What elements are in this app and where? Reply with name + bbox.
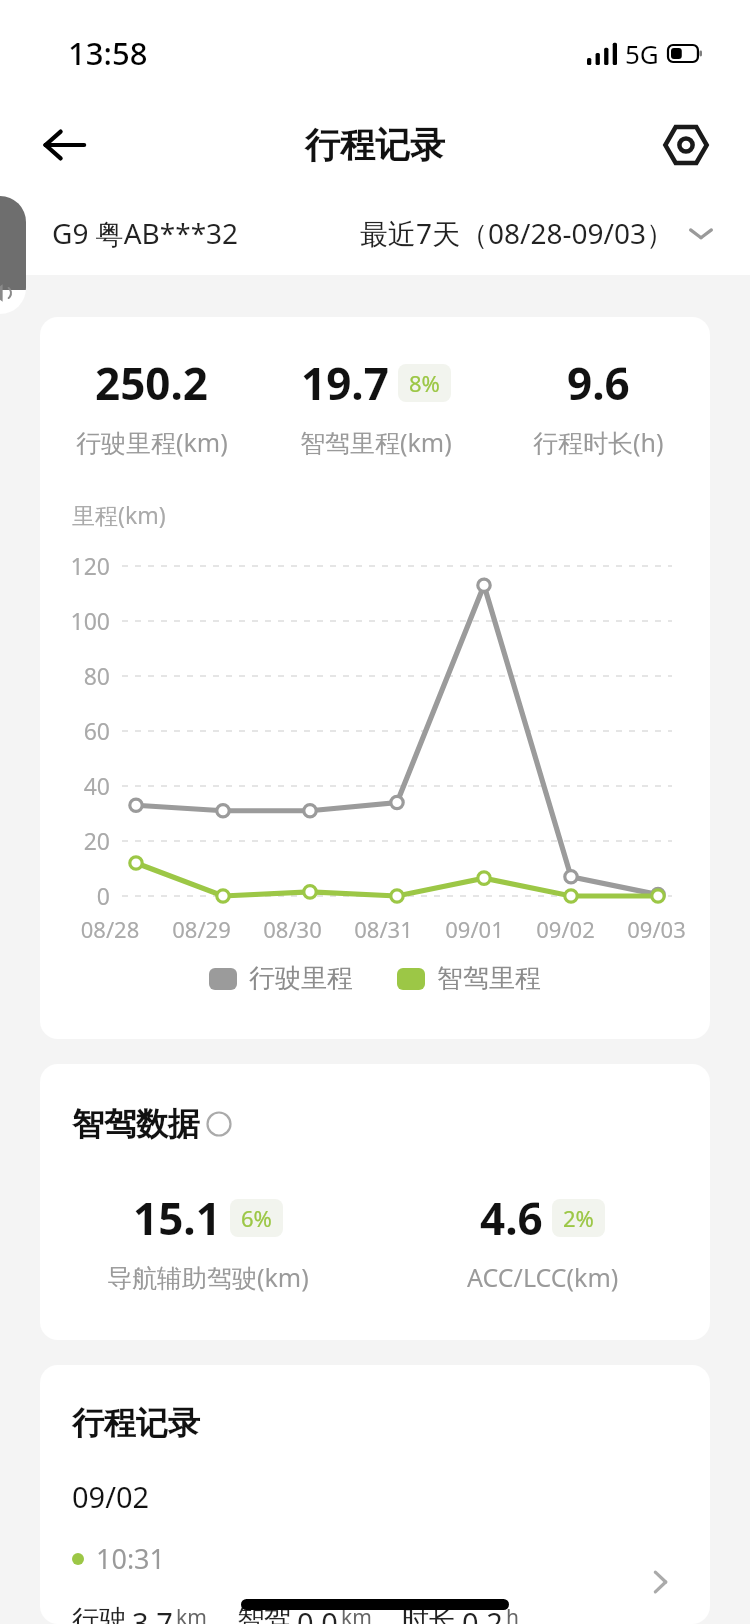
staticText: 行程时长(h) (533, 425, 664, 459)
staticText: 里程(km) (72, 499, 166, 530)
staticText: 行程记录 (72, 1403, 200, 1443)
staticText: 08/28 (64, 914, 156, 944)
staticText: 5G (625, 36, 659, 71)
staticText: km (341, 1603, 372, 1624)
staticText: 09/03 (611, 914, 702, 944)
staticText: 15.1 (133, 1188, 221, 1248)
button[interactable]: 最近7天（08/28-09/03） (360, 214, 714, 252)
staticText: 3.7 (132, 1603, 173, 1624)
staticText: 0.2 (462, 1603, 503, 1624)
button[interactable]: 9.6 (487, 353, 710, 459)
staticText: 40 (40, 770, 110, 801)
staticText: 4.6 (480, 1188, 543, 1248)
staticText: 09/01 (429, 914, 520, 944)
staticText: 智驾 (237, 1603, 291, 1624)
staticText: 智驾里程 (437, 962, 541, 995)
button[interactable]: 行驶里程 (209, 962, 353, 995)
staticText: 0.0 (297, 1603, 338, 1624)
staticText: 20 (40, 825, 110, 856)
button[interactable]: 15.1 (40, 1188, 375, 1294)
button[interactable]: Settings (648, 107, 724, 183)
staticText: 6% (241, 1203, 272, 1233)
staticText: 导航辅助驾驶(km) (107, 1260, 309, 1294)
staticText: 09/02 (520, 914, 611, 944)
staticText: ACC/LCC(km) (467, 1260, 619, 1294)
staticText: 智驾里程(km) (300, 425, 452, 459)
staticText: 80 (40, 660, 110, 691)
staticText: 时长 (402, 1603, 456, 1624)
button[interactable]: 智驾里程 (397, 962, 541, 995)
button[interactable]: 19.7 (264, 353, 487, 459)
staticText: 120 (40, 550, 110, 581)
staticText: 100 (40, 605, 110, 636)
staticText: 250.2 (95, 353, 209, 413)
staticText: 9.6 (567, 353, 630, 413)
staticText: G9 粤AB***32 (52, 214, 239, 252)
staticText: 行驶里程(km) (76, 425, 228, 459)
staticText: h (506, 1603, 519, 1624)
button[interactable]: 智驾数据 (72, 1104, 232, 1144)
staticText: 08/31 (338, 914, 429, 944)
button[interactable]: 10:31 (40, 1540, 710, 1624)
staticText: 行驶 (72, 1603, 126, 1624)
staticText: 09/02 (72, 1477, 150, 1516)
staticText: 2% (563, 1203, 594, 1233)
button[interactable]: 250.2 (40, 353, 264, 459)
staticText: 08/29 (156, 914, 247, 944)
staticText: 最近7天（08/28-09/03） (360, 214, 674, 252)
staticText: 08/30 (247, 914, 338, 944)
staticText: 行驶里程 (249, 962, 353, 995)
staticText: 8% (409, 368, 440, 398)
staticText: 19.7 (301, 353, 389, 413)
button[interactable]: 4.6 (375, 1188, 710, 1294)
staticText: 60 (40, 715, 110, 746)
staticText: 10:31 (96, 1540, 166, 1577)
staticText: 行程记录 (305, 123, 445, 167)
staticText: 0 (40, 880, 110, 911)
staticText: 13:58 (68, 32, 148, 74)
staticText: 智驾数据 (72, 1104, 200, 1144)
button[interactable]: Back (26, 107, 102, 183)
staticText: km (176, 1603, 207, 1624)
